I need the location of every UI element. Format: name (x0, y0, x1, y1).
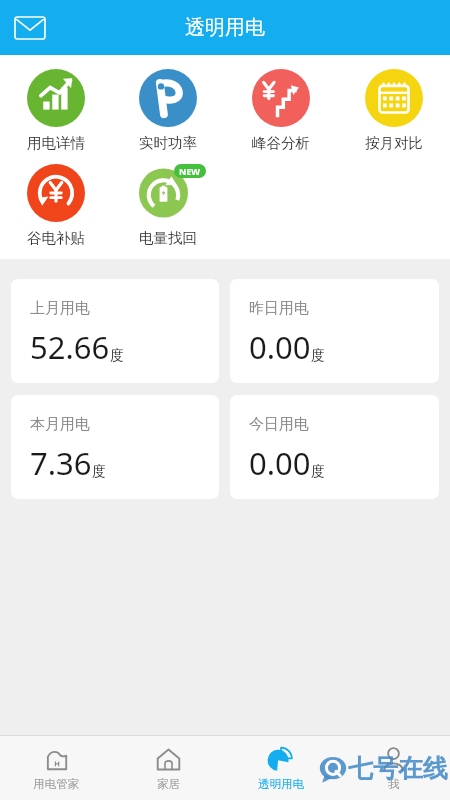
button[interactable]: 我 (337, 736, 450, 800)
staticText: 用电详情 (27, 134, 85, 152)
staticText: 7.36 (30, 442, 92, 484)
staticText: 用电管家 (33, 777, 79, 791)
staticText: 透明用电 (258, 777, 304, 791)
staticText: 度 (110, 347, 124, 365)
button[interactable]: 峰谷分析 (224, 65, 337, 156)
button[interactable]: 上月用电 (11, 279, 219, 383)
staticText: 七号在线 (348, 753, 448, 784)
button[interactable]: 用电管家 (0, 736, 112, 800)
button[interactable]: 家居 (112, 736, 224, 800)
staticText: 我 (388, 777, 400, 791)
staticText: 电量找回 (139, 229, 197, 247)
button[interactable]: 昨日用电 (230, 279, 439, 383)
staticText: 52.66 (30, 326, 110, 368)
staticText: 峰谷分析 (252, 134, 310, 152)
button[interactable]: 今日用电 (230, 395, 439, 499)
staticText: 度 (311, 347, 325, 365)
staticText: 透明用电 (185, 15, 265, 40)
button[interactable]: 谷电补贴 (0, 160, 112, 251)
staticText: 度 (92, 463, 106, 481)
button[interactable]: 按月对比 (337, 65, 450, 156)
staticText: 谷电补贴 (27, 229, 85, 247)
staticText: NEW (179, 165, 201, 177)
staticText: 上月用电 (30, 299, 90, 318)
button[interactable]: 用电详情 (0, 65, 112, 156)
staticText: 0.00 (249, 326, 311, 368)
button[interactable]: 实时功率 (112, 65, 224, 156)
staticText: 昨日用电 (249, 299, 309, 318)
button[interactable]: 透明用电 (224, 736, 337, 800)
staticText: 按月对比 (365, 134, 423, 152)
staticText: 家居 (157, 777, 180, 791)
staticText: 0.00 (249, 442, 311, 484)
button[interactable]: Messages (8, 6, 52, 50)
staticText: 度 (311, 463, 325, 481)
button[interactable]: NEW (112, 160, 224, 251)
button[interactable]: 本月用电 (11, 395, 219, 499)
staticText: 本月用电 (30, 415, 90, 434)
staticText: 今日用电 (249, 415, 309, 434)
staticText: 实时功率 (139, 134, 197, 152)
